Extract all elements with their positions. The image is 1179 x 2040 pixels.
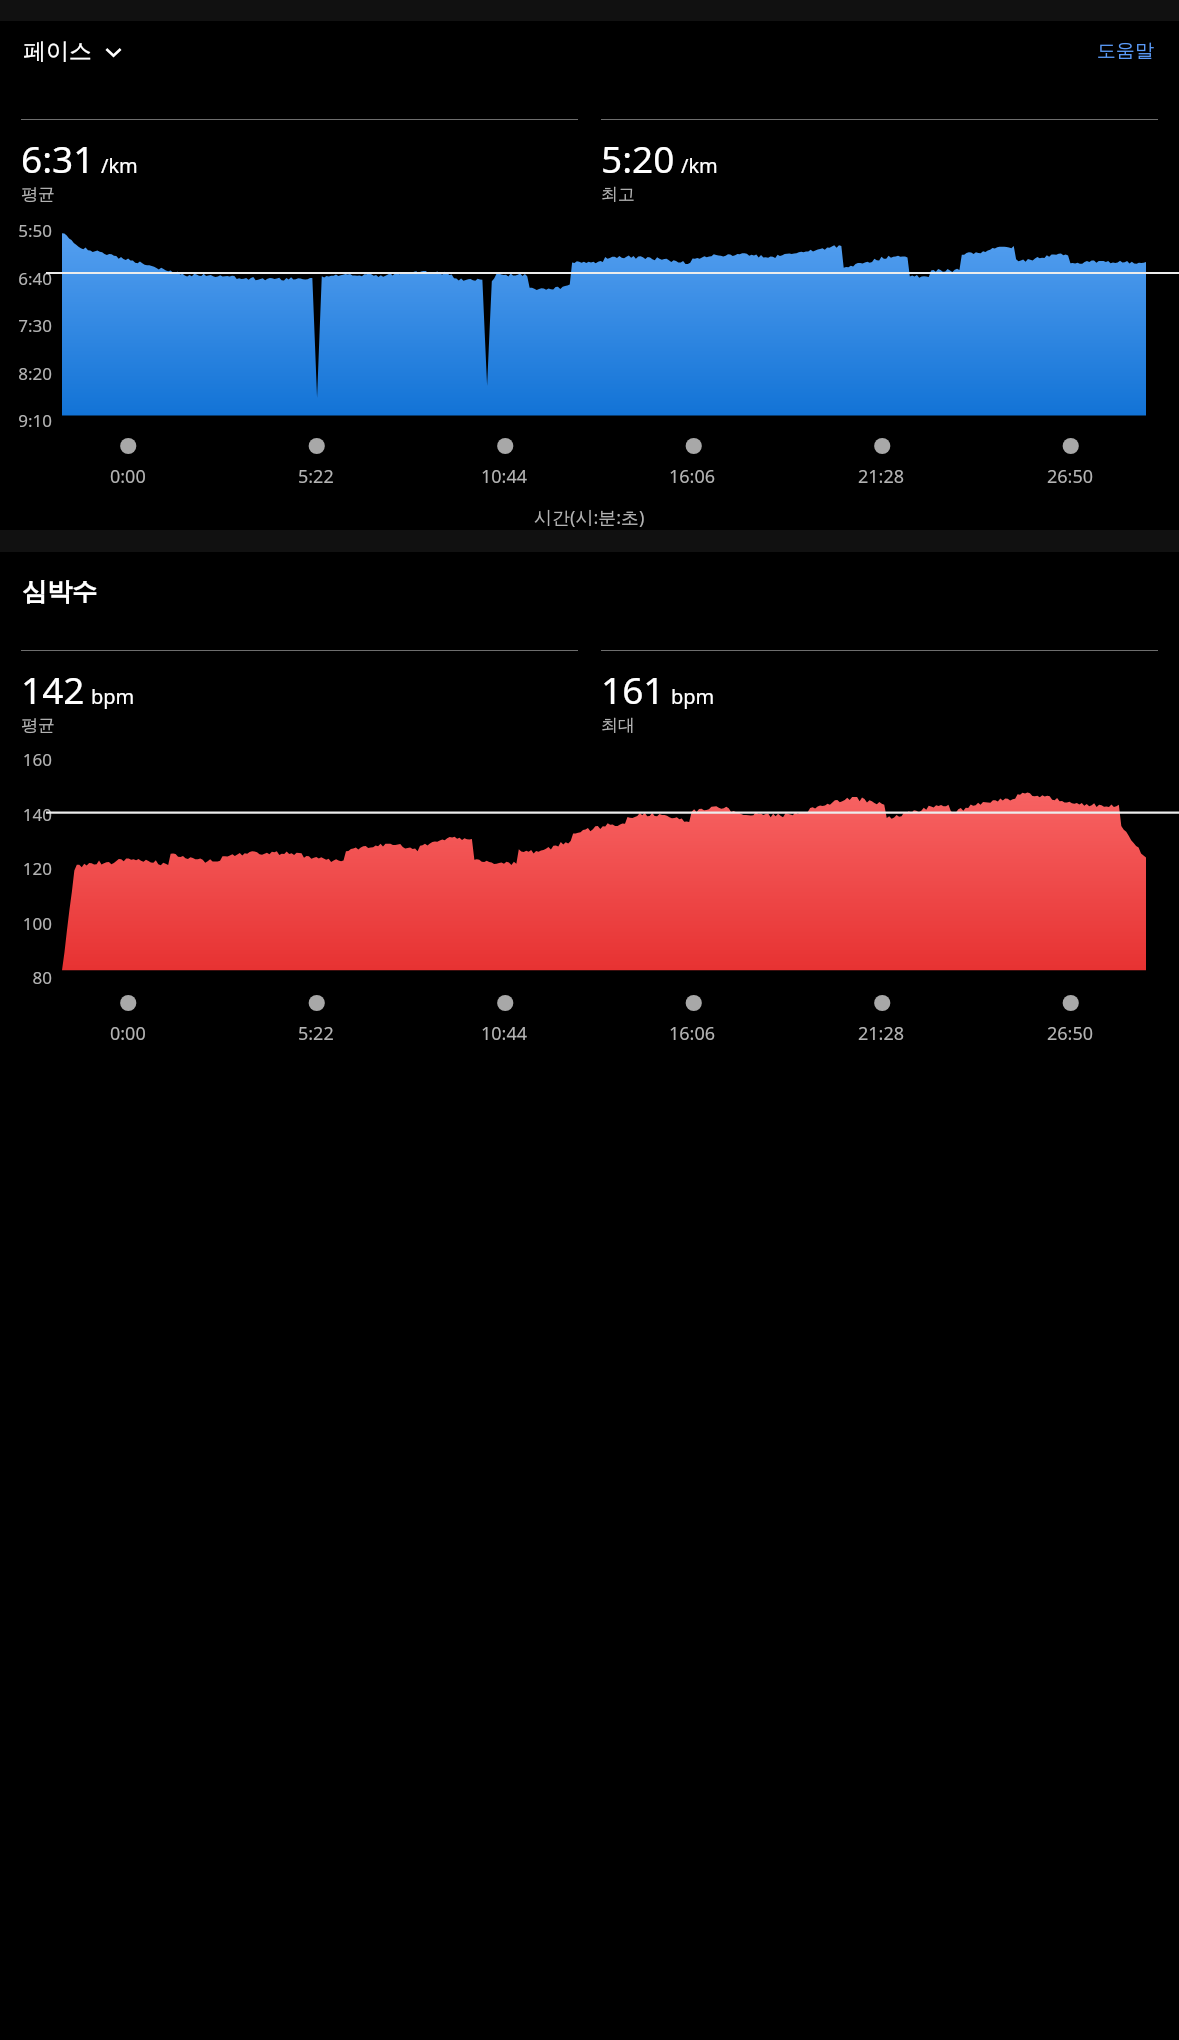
staticText: 5:22 [298,1021,334,1046]
staticText: bpm [91,683,135,710]
staticText: 16:06 [669,464,716,489]
staticText: 9:10 [18,409,52,432]
staticText: /km [101,152,138,179]
staticText: 5:50 [18,219,52,242]
staticText: 10:44 [481,1021,528,1046]
button[interactable]: 161 [601,650,1158,736]
staticText: 140 [22,803,52,826]
staticText: 도움말 [1097,39,1154,63]
staticText: 6:31 [21,133,95,183]
staticText: 0:00 [110,464,146,489]
staticText: 21:28 [858,1021,905,1046]
staticText: 심박수 [22,576,97,607]
staticText: 120 [22,857,52,880]
staticText: 10:44 [481,464,528,489]
button[interactable]: 5:20 [601,119,1158,205]
staticText: 160 [22,748,52,771]
staticText: 5:22 [298,464,334,489]
button[interactable]: 142 [21,650,578,736]
staticText: /km [681,152,718,179]
button[interactable]: 도움말 [1092,30,1159,72]
staticText: 0:00 [110,1021,146,1046]
staticText: 평균 [21,184,55,205]
staticText: 페이스 [23,37,92,66]
staticText: 최고 [601,184,635,205]
staticText: 시간(시:분:초) [534,505,645,530]
staticText: 100 [22,912,52,935]
button[interactable]: 페이스 [20,29,127,74]
staticText: 21:28 [858,464,905,489]
staticText: 142 [21,664,85,714]
staticText: 26:50 [1047,1021,1094,1046]
button[interactable]: 6:31 [21,119,578,205]
staticText: 26:50 [1047,464,1094,489]
staticText: 16:06 [669,1021,716,1046]
staticText: 6:40 [18,267,52,290]
staticText: 5:20 [601,133,675,183]
staticText: 161 [601,664,665,714]
staticText: 최대 [601,715,635,736]
staticText: bpm [671,683,715,710]
staticText: 80 [32,966,52,989]
staticText: 8:20 [18,362,52,385]
staticText: 7:30 [18,314,52,337]
staticText: 평균 [21,715,55,736]
